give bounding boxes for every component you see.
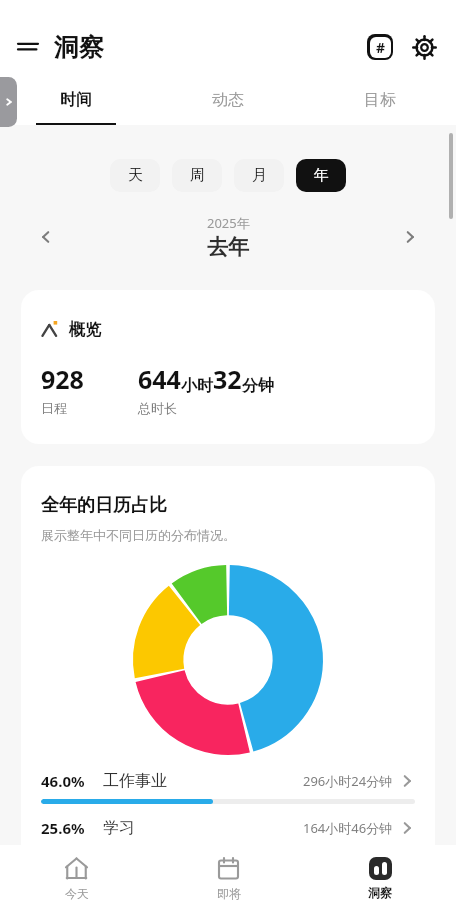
staticText: 时间 [60, 90, 92, 110]
button[interactable]: Tags [358, 25, 402, 69]
button[interactable]: Next [390, 217, 430, 257]
button[interactable]: Open drawer [0, 77, 17, 127]
staticText: 动态 [212, 90, 244, 110]
button[interactable]: 时间 [0, 77, 152, 123]
button[interactable]: 动态 [152, 77, 304, 123]
staticText: 概览 [69, 320, 101, 340]
button[interactable]: 今天 [0, 845, 152, 912]
button[interactable]: 46.0% [41, 771, 415, 804]
button[interactable]: 天 [110, 159, 160, 192]
staticText: 洞察 [54, 32, 104, 63]
button[interactable]: 月 [234, 159, 284, 192]
staticText: 32 [213, 362, 242, 396]
staticText: 25.6% [41, 818, 85, 838]
staticText: 46.0% [41, 771, 85, 791]
staticText: 小时 [181, 376, 213, 396]
staticText: 即将 [217, 886, 241, 901]
staticText: 2025年 [207, 214, 250, 232]
button[interactable]: 目标 [304, 77, 456, 123]
button[interactable]: 25.6% [41, 818, 415, 845]
staticText: 164小时46分钟 [303, 819, 393, 837]
button[interactable]: 周 [172, 159, 222, 192]
staticText: 洞察 [368, 885, 392, 900]
button[interactable]: Menu [8, 27, 48, 67]
staticText: 928 [41, 362, 84, 396]
button[interactable]: 即将 [152, 845, 304, 912]
staticText: 日程 [41, 400, 67, 416]
staticText: 全年的日历占比 [41, 494, 167, 517]
button[interactable]: Previous [26, 217, 66, 257]
staticText: 工作事业 [103, 771, 167, 791]
staticText: 周 [190, 166, 205, 185]
staticText: 天 [128, 166, 143, 185]
staticText: # [376, 38, 386, 57]
button[interactable]: Settings [402, 25, 446, 69]
staticText: 644 [138, 362, 181, 396]
button[interactable]: 洞察 [304, 845, 456, 912]
staticText: 分钟 [242, 376, 274, 396]
staticText: 展示整年中不同日历的分布情况。 [41, 527, 236, 543]
staticText: 今天 [65, 886, 89, 901]
staticText: 去年 [207, 234, 249, 260]
staticText: 年 [314, 166, 329, 185]
staticText: 月 [252, 166, 267, 185]
staticText: 296小时24分钟 [303, 772, 393, 790]
button[interactable]: 年 [296, 159, 346, 192]
staticText: 总时长 [138, 400, 177, 416]
staticText: 学习 [103, 818, 135, 838]
staticText: 目标 [364, 90, 396, 110]
